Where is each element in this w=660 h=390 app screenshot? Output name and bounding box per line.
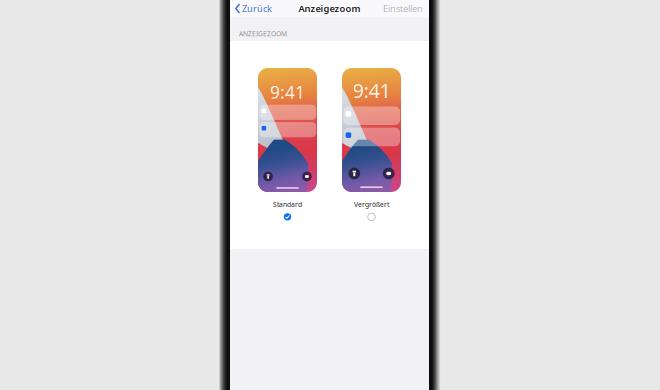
staticText: 9:41 (352, 77, 390, 104)
staticText: Standard (273, 200, 302, 209)
staticText: Anzeigezoom (298, 2, 360, 15)
staticText: ANZEIGEZOOM (239, 29, 287, 38)
button[interactable]: 9:41 (258, 68, 317, 222)
button[interactable]: 9:41 (342, 68, 401, 222)
staticText: Zurück (242, 2, 272, 15)
button[interactable]: Zurück (230, 0, 272, 18)
staticText: 9:41 (270, 81, 305, 104)
staticText: Vergrößert (354, 200, 389, 209)
staticText: Einstellen (383, 2, 423, 15)
button[interactable]: Einstellen (383, 0, 429, 18)
